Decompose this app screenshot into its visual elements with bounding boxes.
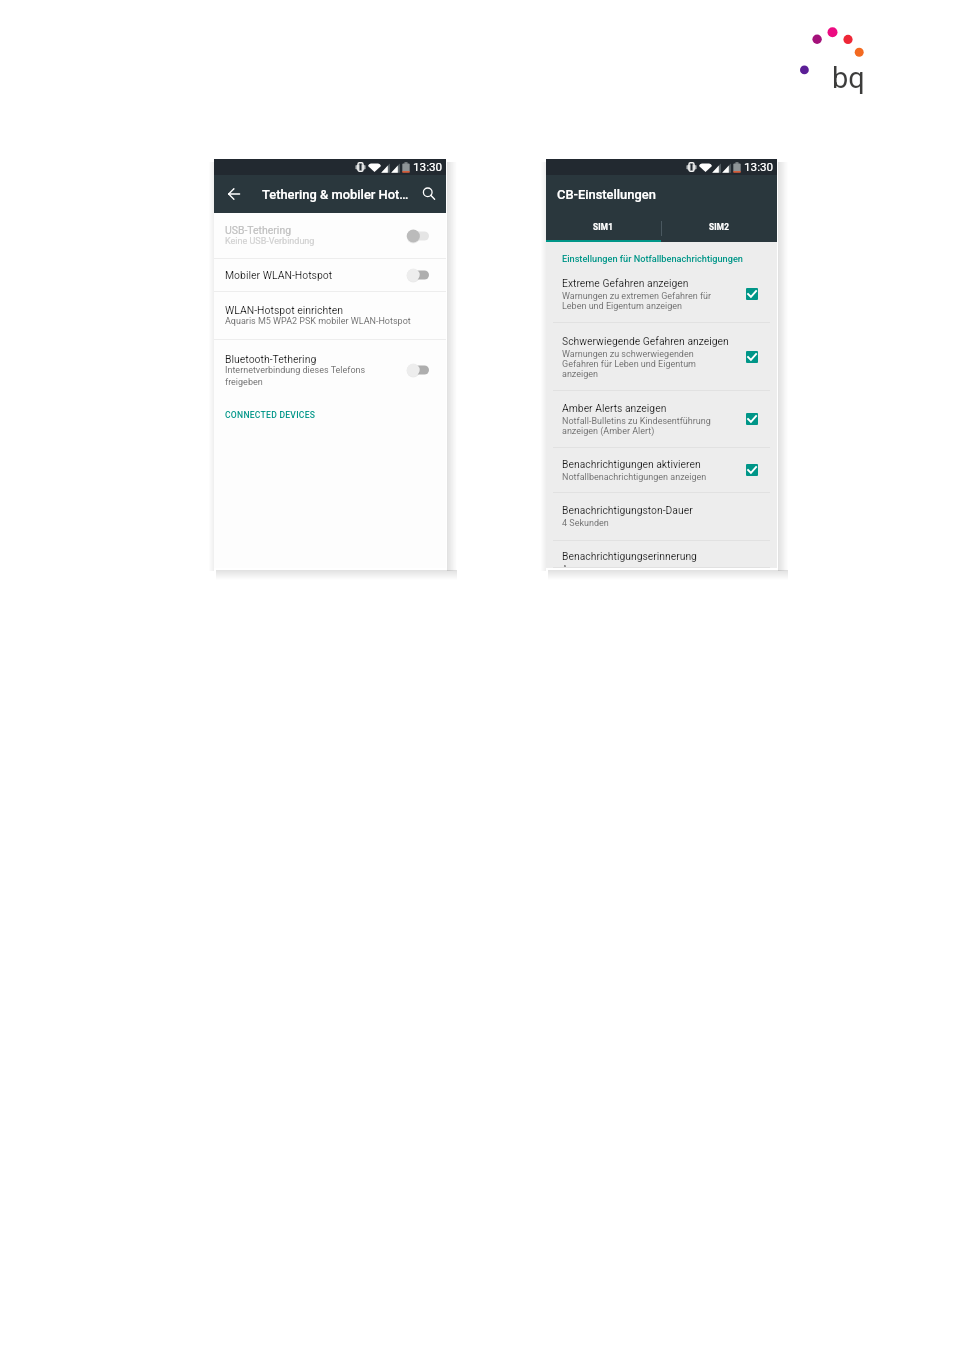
staticText: Notfallbenachrichtigungen anzeigen xyxy=(562,472,707,483)
staticText: Internetverbindung dieses Telefons freig… xyxy=(225,365,366,387)
staticText: 13:30 xyxy=(744,160,774,174)
staticText: Aus xyxy=(562,564,578,567)
button[interactable]: Back xyxy=(216,175,252,213)
staticText: Benachrichtigungserinnerung xyxy=(562,550,697,562)
button[interactable]: SIM1 xyxy=(546,216,661,240)
staticText: Aquaris M5 WPA2 PSK mobiler WLAN-Hotspot xyxy=(225,316,411,327)
button[interactable]: Search xyxy=(412,175,446,213)
staticText: CB-Einstellungen xyxy=(557,187,656,202)
button[interactable]: SIM2 xyxy=(661,216,777,240)
staticText: Keine USB-Verbindung xyxy=(225,236,315,247)
staticText: Notfall-Bulletins zu Kindesentführung an… xyxy=(562,416,711,436)
button[interactable]: CONNECTED DEVICES xyxy=(214,400,446,430)
button[interactable]: Benachrichtigungen aktivieren xyxy=(546,448,777,492)
staticText: USB-Tethering xyxy=(225,224,292,236)
staticText: 13:30 xyxy=(413,160,443,174)
button[interactable]: Amber Alerts anzeigen xyxy=(546,391,777,447)
staticText: Warnungen zu extremen Gefahren für Leben… xyxy=(562,291,712,311)
button[interactable]: WLAN-Hotspot einrichten xyxy=(214,292,446,339)
staticText: Tethering & mobiler Hot… xyxy=(262,187,409,202)
button[interactable]: Bluetooth-Tethering xyxy=(214,340,446,400)
staticText: Einstellungen für Notfallbenachrichtigun… xyxy=(562,253,743,264)
button[interactable]: USB-Tethering xyxy=(214,213,446,258)
staticText: WLAN-Hotspot einrichten xyxy=(225,304,343,316)
button[interactable]: Mobiler WLAN-Hotspot xyxy=(214,259,446,291)
button[interactable]: Schwerwiegende Gefahren anzeigen xyxy=(546,323,777,390)
staticText: Mobiler WLAN-Hotspot xyxy=(225,269,333,281)
staticText: Amber Alerts anzeigen xyxy=(562,402,667,414)
staticText: bq xyxy=(832,61,865,95)
button[interactable]: Extreme Gefahren anzeigen xyxy=(546,266,777,322)
staticText: SIM2 xyxy=(709,222,730,232)
button[interactable]: Checkbox xyxy=(744,462,760,478)
staticText: CONNECTED DEVICES xyxy=(225,410,316,420)
staticText: Warnungen zu schwerwiegenden Gefahren fü… xyxy=(562,349,696,379)
staticText: Schwerwiegende Gefahren anzeigen xyxy=(562,335,729,347)
staticText: SIM1 xyxy=(593,222,614,232)
button[interactable]: Checkbox xyxy=(744,286,760,302)
button[interactable]: Benachrichtigungston-Dauer xyxy=(546,493,777,540)
button[interactable]: Checkbox xyxy=(744,349,760,365)
button[interactable]: Checkbox xyxy=(744,411,760,427)
staticText: Benachrichtigungston-Dauer xyxy=(562,504,693,516)
staticText: Extreme Gefahren anzeigen xyxy=(562,277,689,289)
staticText: Bluetooth-Tethering xyxy=(225,353,317,365)
button[interactable]: Benachrichtigungserinnerung xyxy=(546,550,777,567)
staticText: Benachrichtigungen aktivieren xyxy=(562,458,701,470)
staticText: 4 Sekunden xyxy=(562,518,609,529)
